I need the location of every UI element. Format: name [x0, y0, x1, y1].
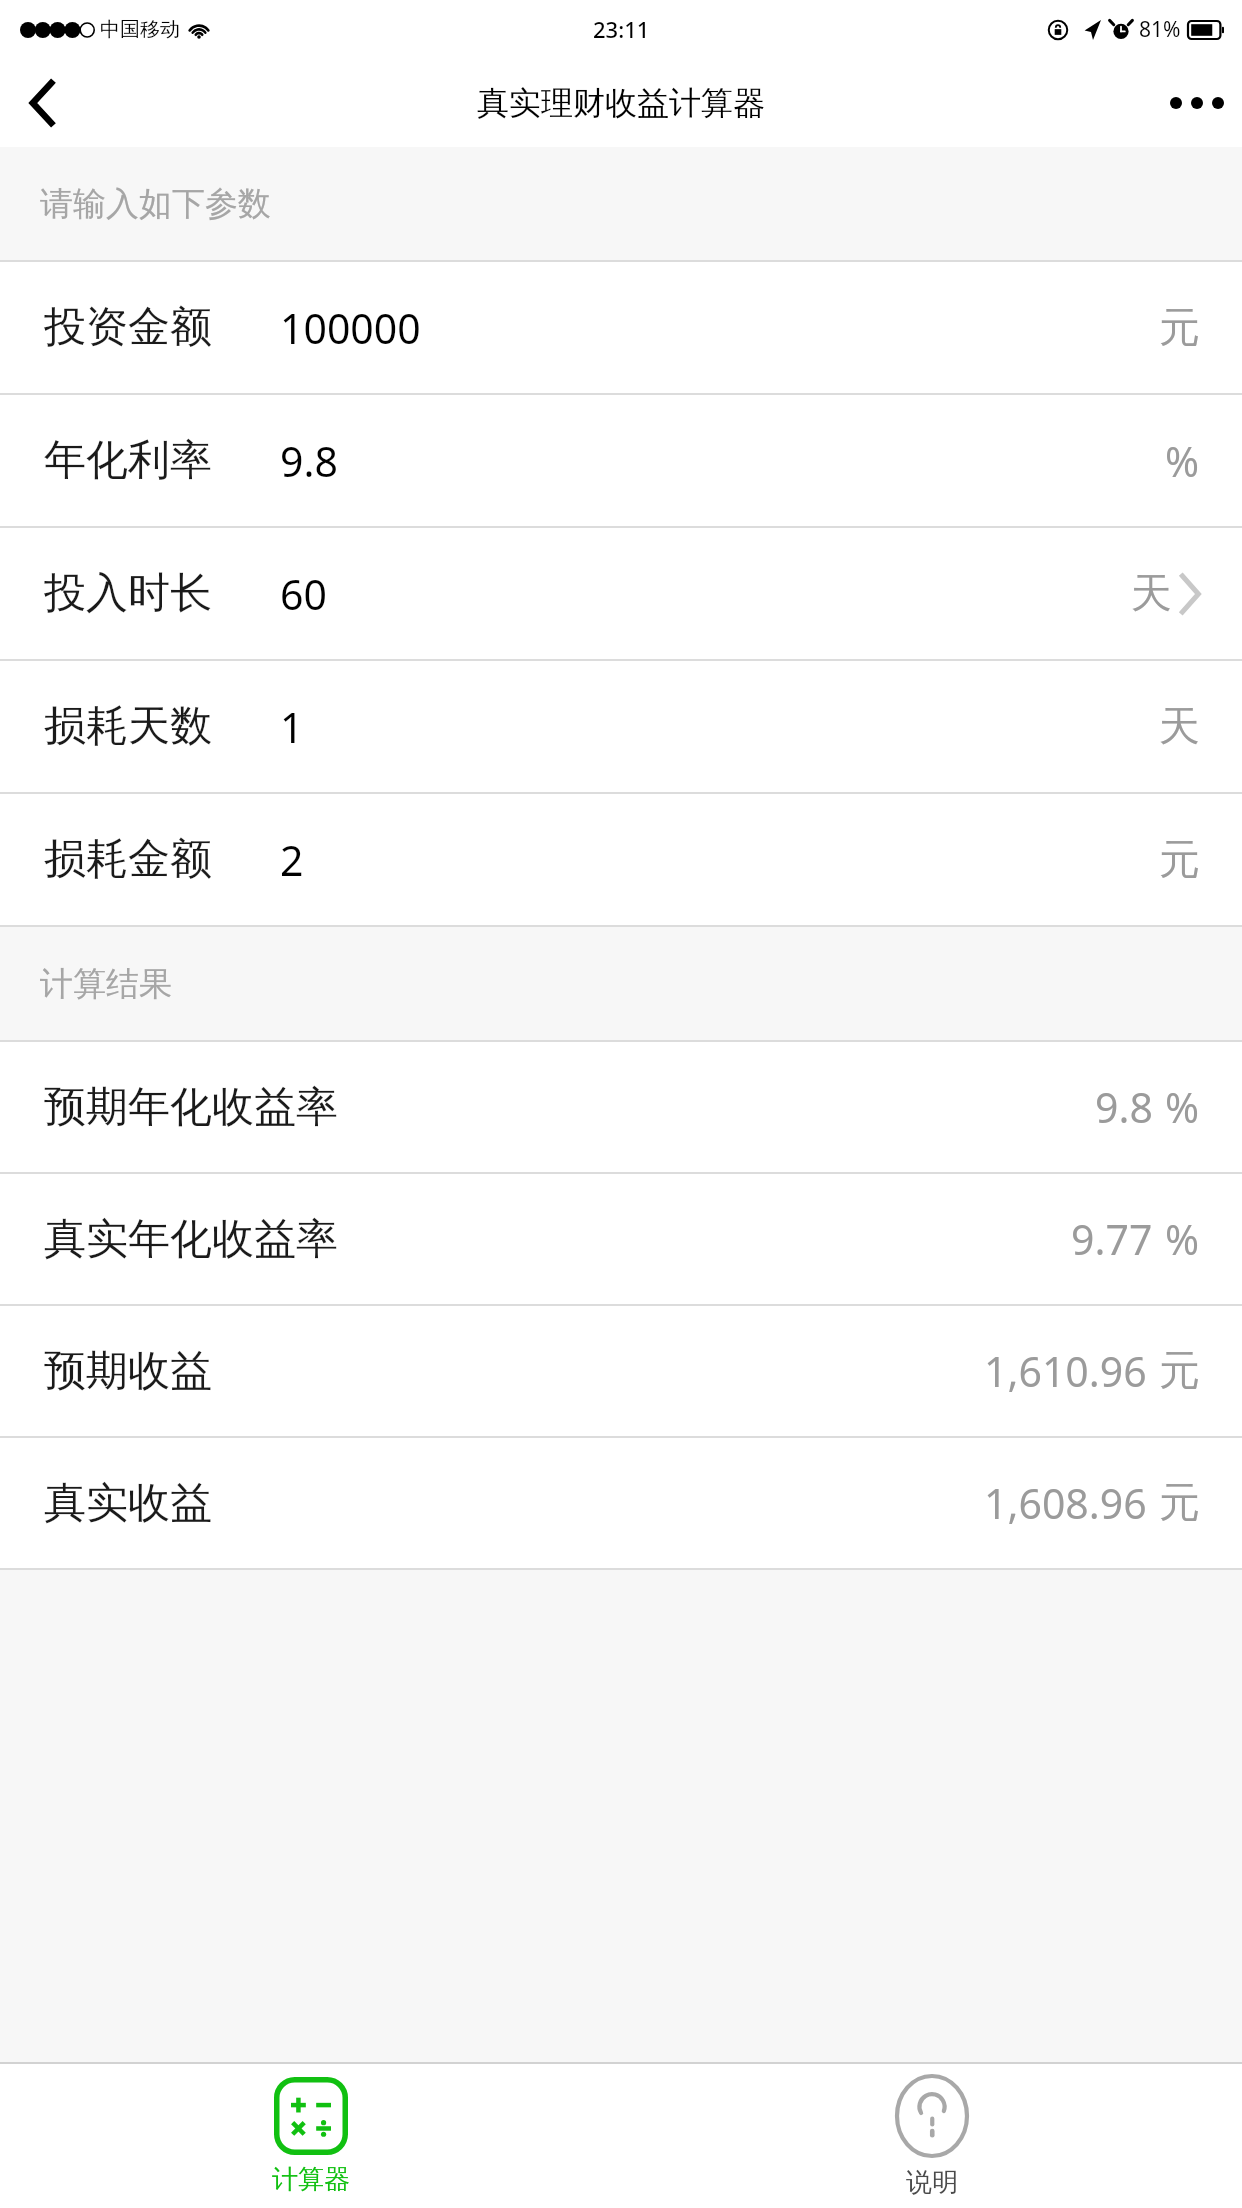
- staticText: 计算器: [272, 2163, 350, 2196]
- staticText: 1,610.96: [984, 1343, 1147, 1399]
- button[interactable]: 计算器: [0, 2064, 621, 2208]
- staticText: 年化利率: [44, 434, 212, 487]
- button[interactable]: 投入时长: [0, 528, 1242, 659]
- button[interactable]: 真实收益: [0, 1438, 1242, 1568]
- staticText: 损耗金额: [44, 833, 212, 886]
- button[interactable]: 真实年化收益率: [0, 1174, 1242, 1304]
- staticText: 预期年化收益率: [44, 1081, 338, 1134]
- button[interactable]: More options: [1152, 58, 1242, 147]
- staticText: 天: [1159, 701, 1200, 753]
- staticText: 投资金额: [44, 301, 212, 354]
- staticText: 81%: [1139, 15, 1181, 44]
- staticText: %: [1165, 1079, 1200, 1135]
- staticText: 60: [280, 566, 327, 622]
- staticText: 9.8: [1095, 1079, 1153, 1135]
- staticText: 说明: [906, 2166, 958, 2199]
- button[interactable]: 损耗天数: [0, 661, 1242, 792]
- staticText: %: [1165, 1211, 1200, 1267]
- button[interactable]: 投资金额: [0, 262, 1242, 393]
- staticText: 真实年化收益率: [44, 1213, 338, 1266]
- staticText: 元: [1159, 302, 1200, 354]
- staticText: 投入时长: [44, 567, 212, 620]
- staticText: 天: [1131, 568, 1172, 620]
- staticText: 2: [280, 832, 304, 888]
- button[interactable]: 预期年化收益率: [0, 1042, 1242, 1172]
- staticText: 9.77: [1071, 1211, 1153, 1267]
- staticText: 请输入如下参数: [40, 183, 271, 225]
- staticText: 中国移动: [100, 17, 180, 42]
- staticText: 元: [1159, 834, 1200, 886]
- staticText: 预期收益: [44, 1345, 212, 1398]
- staticText: %: [1165, 433, 1200, 489]
- staticText: 9.8: [280, 433, 338, 489]
- staticText: 损耗天数: [44, 700, 212, 753]
- staticText: 元: [1159, 1345, 1200, 1397]
- staticText: 100000: [280, 300, 421, 356]
- staticText: 计算结果: [40, 963, 172, 1005]
- button[interactable]: 年化利率: [0, 395, 1242, 526]
- staticText: 元: [1159, 1477, 1200, 1529]
- button[interactable]: 说明: [621, 2064, 1242, 2208]
- staticText: 1: [280, 699, 304, 755]
- button[interactable]: Back: [0, 61, 84, 145]
- staticText: 真实理财收益计算器: [477, 83, 765, 123]
- staticText: 真实收益: [44, 1477, 212, 1530]
- staticText: 23:11: [593, 14, 650, 44]
- staticText: 1,608.96: [984, 1475, 1147, 1531]
- button[interactable]: 预期收益: [0, 1306, 1242, 1436]
- button[interactable]: 损耗金额: [0, 794, 1242, 925]
